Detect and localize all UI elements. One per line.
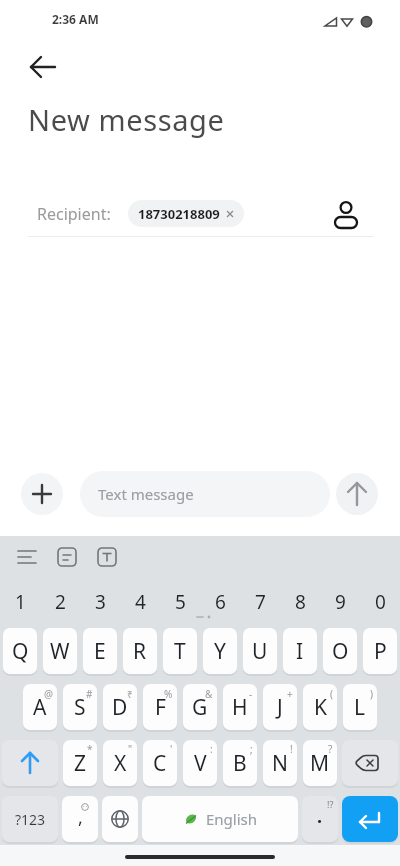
button[interactable] [342, 740, 398, 786]
staticText: 6 [215, 589, 226, 615]
staticText: ? [328, 742, 333, 756]
button[interactable]: A [23, 684, 57, 730]
staticText: * [87, 742, 93, 756]
button[interactable] [330, 195, 362, 231]
staticText: 4 [135, 589, 146, 615]
button[interactable]: B [223, 740, 257, 786]
button[interactable]: M [303, 740, 337, 786]
staticText: ) [370, 687, 373, 701]
button[interactable]: S [63, 684, 97, 730]
staticText: Z [74, 749, 87, 778]
staticText: A [33, 693, 47, 722]
button[interactable]: G [183, 684, 217, 730]
staticText: B [233, 749, 247, 778]
staticText: D [112, 693, 128, 722]
button[interactable]: K [303, 684, 337, 730]
button[interactable]: 3 [80, 582, 120, 622]
staticText: , [78, 805, 83, 830]
button[interactable]: Z [63, 740, 97, 786]
button[interactable]: V [183, 740, 217, 786]
staticText: V [194, 749, 207, 778]
staticText: M [310, 749, 330, 778]
button[interactable] [342, 796, 398, 842]
staticText: W [50, 637, 70, 666]
staticText: U [252, 637, 268, 666]
button[interactable]: . [302, 796, 338, 842]
staticText: & [205, 687, 213, 701]
staticText: - [249, 687, 253, 701]
button[interactable]: 2 [40, 582, 80, 622]
button[interactable]: Text message [80, 471, 330, 517]
button[interactable]: 4 [120, 582, 160, 622]
button[interactable]: X [103, 740, 137, 786]
staticText: ; [250, 742, 253, 756]
button[interactable]: 1 [0, 582, 40, 622]
button[interactable]: J [263, 684, 297, 730]
staticText: !? [327, 798, 334, 810]
staticText: ( [330, 687, 333, 701]
staticText: E [94, 637, 106, 666]
button[interactable]: U [243, 628, 277, 674]
button[interactable] [22, 52, 62, 82]
button[interactable]: F [143, 684, 177, 730]
button[interactable] [102, 796, 138, 842]
button[interactable]: E [83, 628, 117, 674]
staticText: 0 [375, 589, 386, 615]
staticText: Q [12, 637, 29, 666]
button[interactable]: H [223, 684, 257, 730]
button[interactable]: 6 [200, 582, 240, 622]
button[interactable]: 9 [320, 582, 360, 622]
staticText: 2:36 AM [52, 11, 99, 27]
staticText: " [128, 742, 133, 756]
button[interactable]: T [163, 628, 197, 674]
button[interactable]: 8 [280, 582, 320, 622]
button[interactable]: L [343, 684, 377, 730]
button[interactable]: D [103, 684, 137, 730]
staticText: ! [290, 742, 293, 756]
button[interactable]: P [363, 628, 397, 674]
staticText: ?123 [15, 810, 46, 829]
button[interactable]: 5 [160, 582, 200, 622]
button[interactable]: 7 [240, 582, 280, 622]
button[interactable]: N [263, 740, 297, 786]
staticText: New message [28, 100, 225, 139]
staticText: 3 [95, 589, 106, 615]
staticText: 7 [255, 589, 266, 615]
staticText: + [287, 687, 293, 701]
button[interactable]: English [142, 796, 298, 842]
button[interactable]: Y [203, 628, 237, 674]
button[interactable]: , [62, 796, 98, 842]
button[interactable] [336, 473, 378, 515]
staticText: K [314, 693, 327, 722]
button[interactable]: I [283, 628, 317, 674]
staticText: T [174, 637, 186, 666]
staticText: Text message [98, 484, 194, 504]
button[interactable]: R [123, 628, 157, 674]
staticText: 1 [15, 589, 26, 615]
button[interactable]: ?123 [2, 796, 58, 842]
staticText: F [155, 693, 166, 722]
button[interactable] [2, 740, 58, 786]
staticText: . [317, 804, 323, 829]
button[interactable]: O [323, 628, 357, 674]
staticText: P [374, 637, 387, 666]
button[interactable]: 18730218809 [128, 200, 244, 227]
staticText: # [86, 687, 93, 701]
staticText: S [74, 693, 86, 722]
staticText: Y [214, 637, 226, 666]
button[interactable]: C [143, 740, 177, 786]
staticText: Recipient: [37, 203, 111, 225]
staticText: H [232, 693, 248, 722]
staticText: 9 [335, 589, 346, 615]
staticText: % [164, 687, 173, 701]
button[interactable]: 0 [360, 582, 400, 622]
staticText: I [296, 637, 304, 666]
button[interactable]: Q [3, 628, 37, 674]
button[interactable] [21, 473, 63, 515]
staticText: English [206, 809, 258, 829]
button[interactable]: W [43, 628, 77, 674]
staticText: 8 [295, 589, 306, 615]
staticText: ' [170, 742, 173, 756]
staticText: N [272, 749, 288, 778]
staticText: ₹ [127, 687, 133, 701]
